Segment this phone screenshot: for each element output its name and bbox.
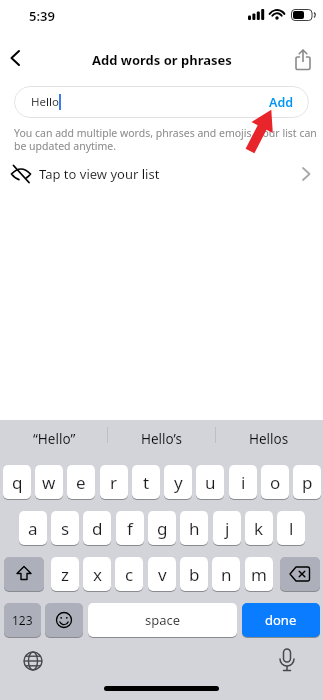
button[interactable] [45, 603, 83, 637]
button[interactable]: a [19, 511, 47, 545]
button[interactable]: i [229, 465, 257, 499]
staticText: j [225, 517, 230, 540]
button[interactable]: g [148, 511, 176, 545]
button[interactable] [4, 557, 44, 591]
button[interactable]: q [3, 465, 31, 499]
button[interactable] [276, 648, 298, 674]
button[interactable]: n [212, 557, 240, 591]
staticText: l [289, 517, 294, 540]
button[interactable]: b [180, 557, 208, 591]
staticText: Hellos [249, 430, 289, 448]
staticText: 123 [12, 612, 33, 628]
button[interactable]: r [100, 465, 128, 499]
button[interactable]: v [148, 557, 176, 591]
staticText: Hello’s [141, 430, 183, 448]
button[interactable] [280, 557, 320, 591]
button[interactable]: y [164, 465, 192, 499]
button[interactable]: 123 [4, 603, 41, 637]
button[interactable] [22, 650, 44, 672]
button[interactable]: o [261, 465, 289, 499]
staticText: a [28, 517, 38, 540]
button[interactable]: w [35, 465, 63, 499]
button[interactable]: t [132, 465, 160, 499]
staticText: o [270, 471, 281, 494]
button[interactable]: c [115, 557, 143, 591]
staticText: i [241, 471, 246, 494]
button[interactable]: Hello [14, 86, 309, 118]
button[interactable]: m [245, 557, 273, 591]
staticText: d [92, 517, 103, 540]
staticText: r [110, 471, 118, 494]
button[interactable]: s [51, 511, 79, 545]
staticText: You can add multiple words, phrases and … [14, 126, 323, 153]
button[interactable]: Add [269, 94, 294, 111]
button[interactable] [293, 48, 313, 72]
staticText: done [265, 611, 297, 629]
staticText: g [157, 517, 168, 540]
staticText: z [61, 563, 69, 586]
staticText: q [12, 471, 23, 494]
staticText: 5:39 [29, 7, 55, 25]
button[interactable]: space [88, 603, 237, 637]
staticText: c [125, 563, 134, 586]
staticText: space [145, 611, 181, 629]
staticText: u [205, 471, 216, 494]
button[interactable] [10, 50, 21, 66]
button[interactable]: e [67, 465, 95, 499]
button[interactable]: Hello’s [108, 420, 216, 458]
staticText: e [76, 471, 86, 494]
button[interactable]: x [83, 557, 111, 591]
staticText: h [189, 517, 200, 540]
staticText: n [221, 563, 232, 586]
staticText: p [302, 471, 313, 494]
staticText: w [42, 471, 56, 494]
staticText: s [61, 517, 70, 540]
button[interactable]: j [213, 511, 241, 545]
button[interactable]: z [51, 557, 79, 591]
button[interactable]: u [196, 465, 224, 499]
staticText: t [143, 471, 150, 494]
staticText: Hello [31, 94, 59, 110]
button[interactable]: p [293, 465, 321, 499]
staticText: Tap to view your list [39, 165, 160, 183]
button[interactable]: f [116, 511, 144, 545]
button[interactable]: k [245, 511, 273, 545]
button[interactable]: d [83, 511, 111, 545]
staticText: k [254, 517, 264, 540]
staticText: “Hello” [33, 430, 76, 448]
staticText: f [127, 517, 133, 540]
staticText: Add words or phrases [92, 51, 232, 69]
staticText: b [189, 563, 200, 586]
staticText: y [174, 471, 183, 494]
button[interactable]: “Hello” [0, 420, 108, 458]
button[interactable]: Hellos [215, 420, 323, 458]
button[interactable]: done [242, 603, 320, 637]
staticText: x [93, 563, 102, 586]
button[interactable]: Tap to view your list [0, 158, 323, 190]
staticText: v [158, 563, 167, 586]
button[interactable]: l [277, 511, 305, 545]
staticText: m [251, 563, 267, 586]
button[interactable]: h [180, 511, 208, 545]
